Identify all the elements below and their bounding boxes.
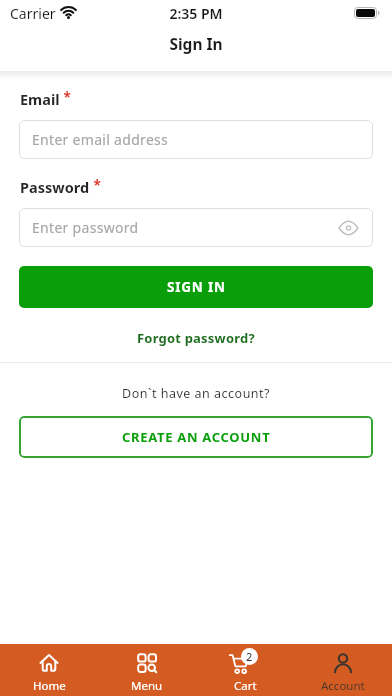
staticText: CREATE AN ACCOUNT [122, 428, 271, 446]
staticText: Forgot password? [137, 329, 255, 347]
staticText: Home [33, 678, 66, 694]
button[interactable]: CREATE AN ACCOUNT [19, 416, 373, 458]
staticText: SIGN IN [167, 278, 226, 296]
button[interactable]: Menu [98, 644, 196, 696]
button[interactable]: Account [294, 644, 392, 696]
staticText: Enter password [32, 218, 139, 237]
staticText: Cart [234, 678, 257, 694]
staticText: Account [321, 678, 365, 694]
staticText: Menu [131, 678, 163, 694]
button[interactable]: Forgot password? [137, 329, 255, 347]
staticText: Don`t have an account? [122, 385, 271, 402]
button[interactable]: Enter email address [19, 120, 373, 159]
staticText: Sign In [0, 33, 392, 54]
button[interactable]: Home [0, 644, 98, 696]
staticText: Carrier [10, 4, 56, 23]
staticText: Password [20, 177, 90, 197]
staticText: 2:35 PM [0, 4, 392, 23]
staticText: Email [20, 89, 60, 109]
staticText: 2 [246, 649, 253, 664]
button[interactable]: Enter password [19, 208, 373, 247]
staticText: * [60, 88, 71, 106]
staticText: Enter email address [32, 130, 169, 149]
staticText: * [90, 176, 101, 194]
button[interactable]: SIGN IN [19, 266, 373, 308]
button[interactable]: 2 [196, 644, 294, 696]
